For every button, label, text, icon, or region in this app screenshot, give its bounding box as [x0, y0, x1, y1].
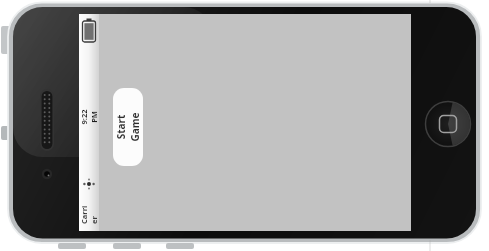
button[interactable]: Start Game [113, 88, 143, 166]
staticText: Start Game [114, 112, 142, 142]
staticText: 9:22 PM [79, 107, 99, 127]
staticText: Carrier [79, 204, 99, 224]
